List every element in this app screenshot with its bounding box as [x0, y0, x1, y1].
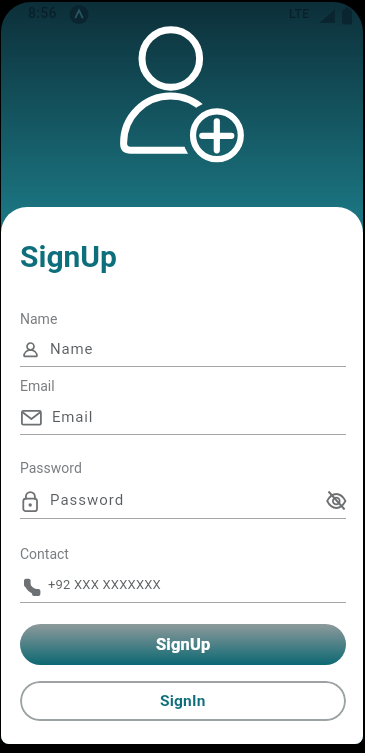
staticText: Password [20, 460, 82, 476]
staticText: SignUp [156, 635, 211, 654]
button[interactable]: SignIn [20, 681, 346, 721]
staticText: SignIn [160, 692, 206, 710]
staticText: LTE [289, 7, 310, 21]
staticText: Name [50, 340, 94, 358]
staticText: Email [20, 378, 55, 394]
button[interactable] [326, 490, 348, 512]
staticText: Email [52, 408, 94, 426]
button[interactable]: SignUp [20, 624, 346, 665]
staticText: SignUp [20, 239, 117, 274]
button[interactable] [20, 573, 346, 607]
staticText: +92 XXX XXXXXXX [48, 577, 161, 592]
button[interactable] [20, 402, 346, 436]
staticText: 8:56 [28, 5, 57, 21]
staticText: Password [50, 491, 125, 509]
button[interactable] [20, 333, 346, 367]
staticText: Contact [20, 546, 69, 562]
staticText: Name [20, 311, 58, 327]
button[interactable] [20, 486, 346, 520]
